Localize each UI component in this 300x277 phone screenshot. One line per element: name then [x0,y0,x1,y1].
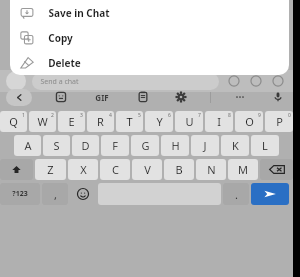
button[interactable]: C [100,159,130,180]
button[interactable]: B [164,159,194,180]
button[interactable]: More options [231,88,249,106]
staticText: J [203,138,207,153]
button[interactable]: Backspace [260,159,293,180]
button[interactable]: X [68,159,98,180]
staticText: 9 [258,112,261,119]
button[interactable]: N [196,159,226,180]
staticText: R [97,114,104,129]
staticText: Delete [48,56,81,70]
staticText: A [24,138,32,153]
button[interactable]: Send a chat [32,73,219,90]
staticText: C [112,162,119,177]
staticText: Q [9,114,18,129]
staticText: I [217,114,221,129]
button[interactable]: F [101,135,129,156]
button[interactable]: D [72,135,99,156]
staticText: E [68,114,75,129]
button[interactable]: E [58,111,85,132]
staticText: P [276,114,283,129]
button[interactable]: K [221,135,249,156]
button[interactable]: U [175,111,203,132]
staticText: , [54,187,57,202]
staticText: 6 [168,112,171,119]
button[interactable]: R [87,111,114,132]
button[interactable]: Send [251,183,289,205]
staticText: X [80,162,87,177]
staticText: 4 [109,112,112,119]
staticText: Send a chat [40,77,79,87]
staticText: 2 [51,112,54,119]
staticText: M [238,162,248,177]
staticText: G [141,138,150,153]
staticText: 0 [288,112,291,119]
staticText: Copy [48,31,73,45]
staticText: H [171,138,180,153]
staticText: V [144,162,151,177]
button[interactable]: Sticker [52,88,70,106]
staticText: ?123 [12,189,28,199]
button[interactable]: Camera [6,71,26,91]
button[interactable]: W [29,111,56,132]
button[interactable]: I [205,111,233,132]
staticText: O [245,114,254,129]
button[interactable]: V [132,159,162,180]
button[interactable]: Chat action [225,72,243,90]
button[interactable]: , [42,183,68,205]
button[interactable]: Back [6,89,32,106]
staticText: S [53,138,60,153]
button[interactable]: M [228,159,258,180]
button[interactable]: . [223,183,249,205]
staticText: W [37,114,48,129]
button[interactable]: L [251,135,279,156]
button[interactable]: O [235,111,263,132]
button[interactable]: G [131,135,159,156]
staticText: Save in Chat [48,6,110,20]
staticText: 3 [80,112,83,119]
staticText: 1 [22,112,25,119]
button[interactable]: Copy [10,25,289,50]
button[interactable]: P [265,111,293,132]
button[interactable]: Chat action [269,72,287,90]
staticText: Y [156,114,163,129]
staticText: D [81,138,90,153]
button[interactable]: Y [145,111,173,132]
staticText: GIF [95,92,109,103]
button[interactable]: J [191,135,219,156]
staticText: N [207,162,216,177]
button[interactable]: ?123 [0,183,40,205]
button[interactable]: H [161,135,189,156]
button[interactable]: Save in Chat [10,0,289,25]
staticText: Z [47,162,54,177]
button[interactable]: Shift [0,159,33,180]
staticText: 8 [228,112,231,119]
staticText: U [185,114,194,129]
button[interactable]: GIF [90,88,114,106]
staticText: 5 [138,112,141,119]
button[interactable]: Z [35,159,66,180]
button[interactable]: Chat action [247,72,265,90]
button[interactable]: Voice input [269,88,287,106]
button[interactable]: Settings [172,88,190,106]
button[interactable]: T [116,111,143,132]
button[interactable]: Delete [10,50,289,75]
button[interactable]: A [14,135,41,156]
staticText: T [126,114,133,129]
button[interactable]: Clipboard [134,88,152,106]
staticText: L [262,138,268,153]
button[interactable]: Emoji [70,183,96,205]
staticText: F [112,138,118,153]
button[interactable]: S [43,135,70,156]
staticText: . [235,187,238,202]
staticText: K [232,138,239,153]
staticText: 7 [198,112,201,119]
button[interactable]: Q [0,111,27,132]
staticText: B [175,162,183,177]
